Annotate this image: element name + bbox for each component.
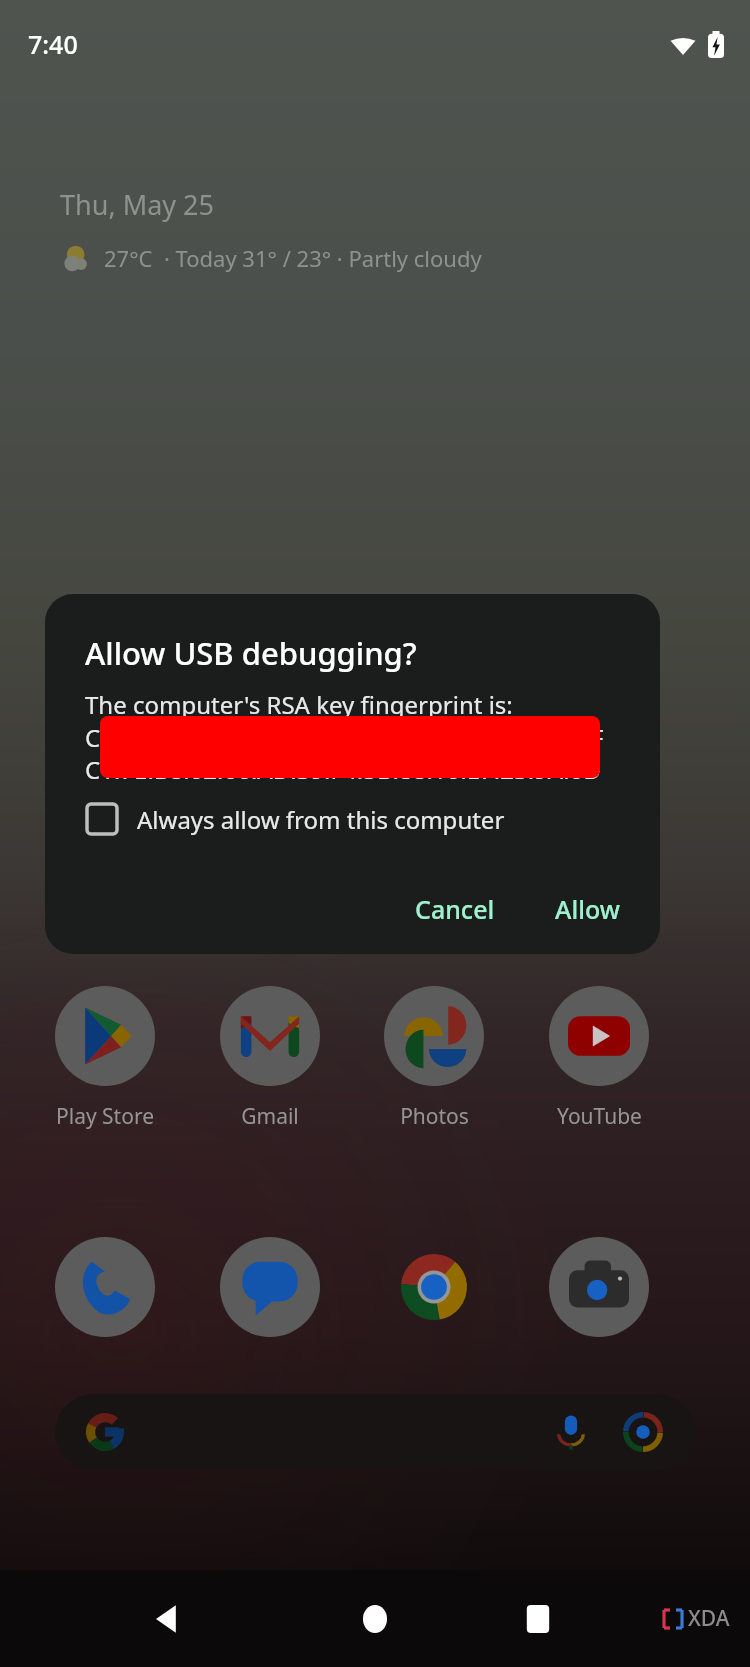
staticText: 27°C · Today 31° / 23° · Partly cloudy xyxy=(104,243,482,273)
staticText: YouTube xyxy=(557,1102,642,1131)
button[interactable]: Camera xyxy=(549,1237,649,1337)
staticText: Allow xyxy=(555,892,620,926)
button[interactable]: Photos xyxy=(372,986,496,1131)
button[interactable]: YouTube xyxy=(537,986,661,1131)
button[interactable]: Allow xyxy=(533,878,642,940)
staticText: The computer's RSA key fingerprint is: xyxy=(85,688,513,721)
staticText: C9:4B:2F:7A:11:DE:8C:55:A0:3B:6E:91:CC:2… xyxy=(85,721,604,786)
button[interactable]: Messages xyxy=(220,1237,320,1337)
button[interactable]: Chrome xyxy=(384,1237,484,1337)
staticText: Photos xyxy=(400,1102,469,1131)
button[interactable]: Back xyxy=(132,1583,204,1655)
button[interactable]: Always allow from this computer xyxy=(85,802,505,836)
staticText: Play Store xyxy=(56,1102,154,1131)
button[interactable]: Cancel xyxy=(393,878,517,940)
staticText: XDA xyxy=(688,1604,730,1633)
button[interactable]: Home xyxy=(339,1583,411,1655)
staticText: Gmail xyxy=(241,1102,299,1131)
button[interactable]: Search xyxy=(55,1394,695,1470)
button[interactable]: Gmail xyxy=(208,986,332,1131)
button[interactable]: Play Store xyxy=(43,986,167,1131)
staticText: Always allow from this computer xyxy=(137,803,505,836)
staticText: 7:40 xyxy=(28,27,78,61)
staticText: Thu, May 25 xyxy=(60,186,214,223)
staticText: Cancel xyxy=(415,892,495,926)
button[interactable]: Phone xyxy=(55,1237,155,1337)
button[interactable]: Recent apps xyxy=(502,1583,574,1655)
staticText: Allow USB debugging? xyxy=(85,632,417,674)
